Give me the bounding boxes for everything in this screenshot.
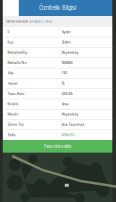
staticText: Didim bbox=[62, 40, 71, 44]
staticText: Bina/BBS Listesi bbox=[29, 20, 52, 23]
staticText: Arsa bbox=[62, 102, 69, 106]
staticText: Zemin Tip bbox=[8, 123, 24, 127]
staticText: Akyeniköy bbox=[62, 112, 79, 116]
staticText: İl bbox=[8, 30, 10, 34]
staticText: Aydın bbox=[62, 30, 71, 34]
staticText: Pafta bbox=[8, 133, 16, 137]
staticText: 355.85 bbox=[62, 92, 73, 96]
staticText: Favorilere ekle bbox=[44, 144, 71, 149]
staticText: Ana Taşınmaz bbox=[62, 123, 85, 127]
staticText: Tapu Alanı bbox=[8, 92, 25, 96]
staticText: Mahalle No bbox=[8, 61, 27, 65]
staticText: Öznitelik Bilgisi bbox=[6, 20, 28, 23]
staticText: Ada bbox=[8, 71, 14, 75]
staticText: Öznitelik Bilgisi bbox=[39, 5, 76, 11]
button[interactable]: Info bbox=[3, 0, 19, 16]
staticText: 15 bbox=[62, 81, 65, 85]
button[interactable]: Öznitelik Bilgisi bbox=[5, 16, 29, 27]
staticText: Mevkii bbox=[8, 112, 19, 116]
staticText: Mahalle/Köy bbox=[8, 50, 28, 54]
staticText: İlçe bbox=[8, 40, 14, 44]
staticText: Parsel bbox=[8, 81, 18, 85]
staticText: Nitelik bbox=[8, 102, 19, 106]
staticText: 741 bbox=[62, 71, 67, 75]
button[interactable]: Favorilere ekle bbox=[3, 140, 112, 153]
button[interactable]: Bina/BBS Listesi bbox=[29, 16, 53, 27]
staticText: Akyeniköy bbox=[62, 50, 79, 54]
staticText: 140893 bbox=[62, 61, 73, 65]
staticText: M19b17b bbox=[62, 133, 75, 137]
